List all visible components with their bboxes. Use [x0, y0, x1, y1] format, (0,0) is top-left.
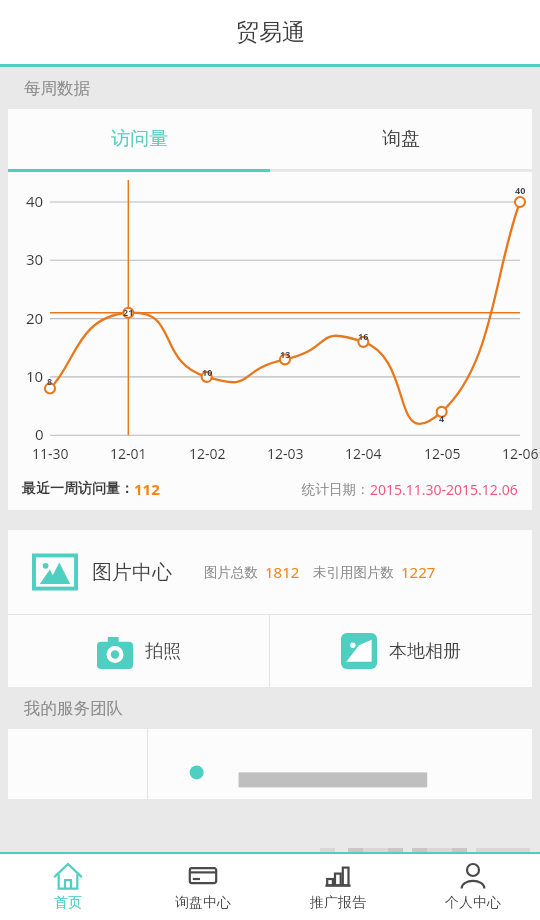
staticText: 12-02 — [189, 444, 226, 463]
staticText: 询盘中心 — [175, 894, 231, 912]
staticText: 12-03 — [267, 444, 304, 463]
staticText: 未引用图片数 — [313, 564, 394, 581]
button[interactable]: 拍照 — [8, 615, 269, 687]
button[interactable]: 访问量 — [8, 109, 270, 169]
button[interactable]: 首页 — [0, 854, 135, 920]
staticText: 我的服务团队 — [24, 698, 123, 719]
staticText: 10 — [26, 366, 44, 386]
staticText: 12-04 — [345, 444, 382, 463]
staticText: 每周数据 — [24, 78, 90, 99]
staticText: 统计日期： — [302, 481, 370, 498]
staticText: 8 — [47, 375, 53, 387]
staticText: 拍照 — [145, 640, 181, 663]
staticText: 11-30 — [32, 444, 69, 463]
staticText: 询盘 — [382, 127, 420, 151]
button[interactable]: 询盘中心 — [135, 854, 270, 920]
button[interactable]: 个人中心 — [405, 854, 540, 920]
staticText: 推广报告 — [310, 894, 366, 912]
staticText: 40 — [515, 184, 526, 196]
staticText: 21 — [123, 306, 134, 318]
staticText: 本地相册 — [389, 640, 461, 663]
staticText: 图片总数 — [204, 564, 258, 581]
button[interactable]: 本地相册 — [270, 615, 532, 687]
staticText: 13 — [280, 348, 291, 360]
button[interactable]: 询盘 — [270, 109, 532, 169]
staticText: 20 — [26, 308, 44, 328]
staticText: 首页 — [54, 894, 82, 912]
button[interactable] — [8, 729, 532, 799]
staticText: 贸易通 — [236, 18, 305, 47]
staticText: 1812 — [265, 562, 300, 582]
staticText: 0 — [35, 424, 44, 444]
staticText: 40 — [26, 191, 44, 211]
staticText: 16 — [358, 330, 369, 342]
button[interactable]: 图片中心 — [8, 530, 532, 614]
staticText: 30 — [26, 249, 44, 269]
staticText: 1227 — [401, 562, 436, 582]
staticText: 10 — [202, 366, 213, 378]
staticText: 2015.11.30-2015.12.06 — [370, 480, 518, 499]
staticText: 最近一周访问量： — [22, 480, 134, 498]
staticText: 访问量 — [111, 127, 168, 151]
staticText: 12-05 — [424, 444, 461, 463]
staticText: 12-06 — [502, 444, 539, 463]
staticText: 个人中心 — [445, 894, 501, 912]
staticText: 图片中心 — [92, 560, 172, 585]
staticText: 12-01 — [110, 444, 147, 463]
staticText: 112 — [134, 479, 160, 499]
staticText: 4 — [439, 412, 445, 424]
button[interactable]: 推广报告 — [270, 854, 405, 920]
